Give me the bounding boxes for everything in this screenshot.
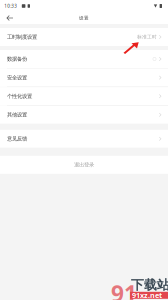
staticText: 数据备份 [7,56,27,62]
staticText: 工时制度设置 [7,34,37,40]
staticText: 91xz.net [132,290,162,300]
staticText: 标准工时 [137,34,157,40]
button[interactable]: 数据备份 [0,50,168,68]
button[interactable]: 工时制度设置 [0,28,168,46]
staticText: 安全设置 [7,74,27,81]
staticText: 退出登录 [74,161,94,168]
staticText: 10:33 [4,3,17,9]
button[interactable]: 其他设置 [0,106,168,124]
staticText: 设置 [79,15,89,21]
button[interactable]: 退出登录 [0,156,168,174]
button[interactable]: Back [0,12,22,24]
button[interactable]: 安全设置 [0,69,168,87]
staticText: 91 [111,278,137,300]
staticText: 意见反馈 [7,135,27,142]
staticText: 个性化设置 [7,93,32,99]
staticText: 下载站 [131,277,168,293]
button[interactable]: 意见反馈 [0,130,168,148]
staticText: 其他设置 [7,111,27,118]
button[interactable]: 个性化设置 [0,87,168,105]
